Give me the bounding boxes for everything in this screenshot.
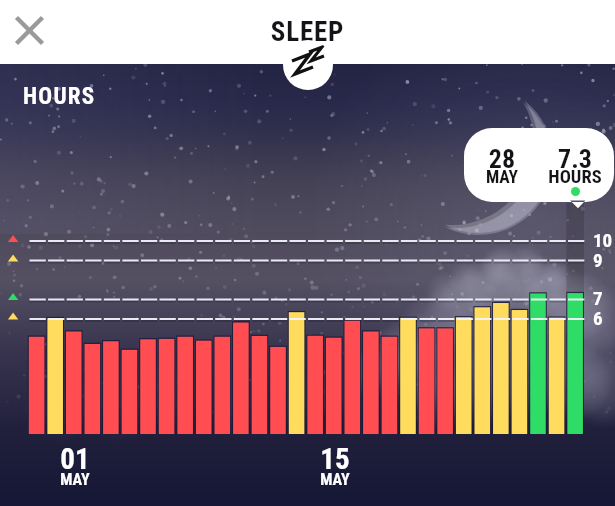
staticText: 10 [593,229,613,251]
staticText: 01 [25,442,125,476]
staticText: MAY [457,167,547,188]
staticText: HOURS [530,166,615,188]
button[interactable]: Close [9,10,50,51]
staticText: MAY [25,470,125,489]
staticText: 7 [593,287,603,309]
staticText: 9 [593,249,603,271]
staticText: SLEEP [0,16,615,48]
staticText: 6 [593,307,603,329]
staticText: 15 [285,442,385,476]
staticText: 7.3 [530,144,615,174]
staticText: 28 [457,144,547,174]
staticText: MAY [285,470,385,489]
staticText: HOURS [23,83,96,110]
